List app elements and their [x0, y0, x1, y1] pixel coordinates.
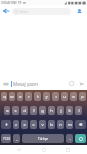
staticText: k [68, 108, 71, 114]
button[interactable]: h [48, 106, 55, 115]
button[interactable]: j [57, 106, 64, 115]
staticText: x [23, 122, 26, 128]
button[interactable]: g [39, 106, 46, 115]
button[interactable]: Recents [62, 145, 74, 154]
button[interactable]: x [21, 120, 28, 129]
button[interactable]: m [66, 120, 73, 129]
button[interactable]: z [13, 120, 19, 129]
button[interactable]: Back [0, 5, 12, 17]
staticText: y [45, 94, 48, 100]
staticText: j [60, 108, 62, 114]
staticText: b [50, 122, 53, 128]
staticText: g [41, 108, 44, 114]
staticText: . [69, 136, 71, 141]
button[interactable]: Mesaj yazın [11, 77, 66, 90]
staticText: w [10, 94, 14, 100]
button[interactable]: Send [76, 77, 87, 90]
button[interactable]: n [57, 120, 64, 129]
button[interactable]: f [30, 106, 37, 115]
button[interactable]: . [66, 134, 73, 143]
staticText: e [19, 94, 22, 100]
button[interactable]: p [79, 92, 86, 101]
button[interactable]: y [43, 92, 50, 101]
staticText: z [15, 122, 17, 128]
button[interactable]: b [48, 120, 55, 129]
button[interactable]: r [25, 92, 32, 101]
button[interactable]: Alex [12, 8, 71, 15]
staticText: d [23, 108, 26, 114]
button[interactable]: Shift [1, 120, 11, 129]
button[interactable]: u [61, 92, 68, 101]
button[interactable]: ı [52, 92, 59, 101]
button[interactable]: Emoji [66, 77, 76, 90]
button[interactable]: e [17, 92, 23, 101]
button[interactable]: l [75, 106, 82, 115]
button[interactable]: a [4, 106, 10, 115]
button[interactable]: Backspace [75, 120, 86, 129]
staticText: t [37, 94, 39, 100]
staticText: s [14, 108, 17, 114]
button[interactable]: Camera [0, 77, 11, 90]
staticText: n [59, 122, 62, 128]
staticText: r [28, 94, 30, 100]
button[interactable]: Home [38, 145, 50, 154]
button[interactable]: s [12, 106, 19, 115]
button[interactable]: w [9, 92, 15, 101]
staticText: , [16, 136, 18, 141]
staticText: l [78, 108, 80, 114]
staticText: f [33, 108, 35, 114]
staticText: m [68, 122, 72, 128]
button[interactable]: k [66, 106, 73, 115]
button[interactable]: c [30, 120, 37, 129]
staticText: o [72, 94, 75, 100]
button[interactable]: , [13, 134, 20, 143]
button[interactable]: d [21, 106, 28, 115]
button[interactable]: v [39, 120, 46, 129]
button[interactable]: Add recipient [71, 5, 87, 17]
button[interactable]: q [1, 92, 7, 101]
staticText: VODAFONE TR [1, 1, 22, 5]
button[interactable]: ?123 [1, 134, 11, 143]
staticText: ?123 [3, 137, 10, 141]
staticText: Türkçe [38, 137, 48, 141]
staticText: Mesaj yazın [13, 81, 39, 87]
staticText: v [41, 122, 44, 128]
staticText: u [63, 94, 66, 100]
staticText: h [50, 108, 53, 114]
staticText: Alex [20, 9, 29, 15]
staticText: a [6, 108, 9, 114]
staticText: ı [55, 94, 57, 100]
button[interactable]: Back [13, 145, 25, 154]
button[interactable]: o [70, 92, 77, 101]
button[interactable]: Türkçe [22, 134, 64, 143]
staticText: c [32, 122, 35, 128]
staticText: q [3, 94, 6, 100]
button[interactable]: t [34, 92, 41, 101]
staticText: p [81, 94, 84, 100]
button[interactable]: Send [75, 134, 86, 143]
